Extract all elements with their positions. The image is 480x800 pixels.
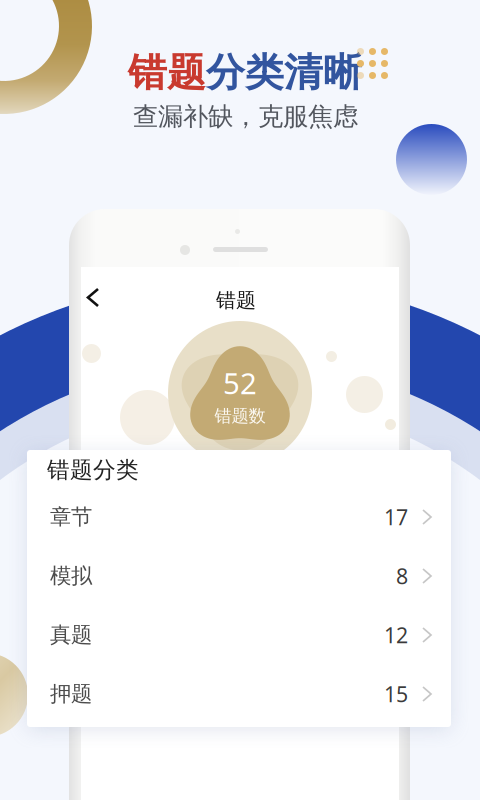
button[interactable]: Back [78,279,108,316]
staticText: 错题分类 [47,456,139,484]
button[interactable]: 模拟 [27,551,451,601]
staticText: 错题 [216,288,256,313]
staticText: 押题 [50,681,92,707]
button[interactable]: 章节 [27,492,451,542]
staticText: 错题数 [214,405,265,427]
staticText: 章节 [50,504,92,530]
staticText: 错题 [128,49,206,96]
staticText: 15 [384,680,408,708]
staticText: 8 [396,562,408,590]
staticText: 12 [384,621,408,649]
staticText: 查漏补缺，克服焦虑 [133,101,358,132]
button[interactable]: 押题 [27,669,451,719]
staticText: 17 [384,503,408,531]
staticText: 52 [223,363,257,402]
staticText: 真题 [50,622,92,648]
button[interactable]: 真题 [27,610,451,660]
staticText: 分类清晰 [206,49,362,96]
staticText: 模拟 [50,563,92,589]
